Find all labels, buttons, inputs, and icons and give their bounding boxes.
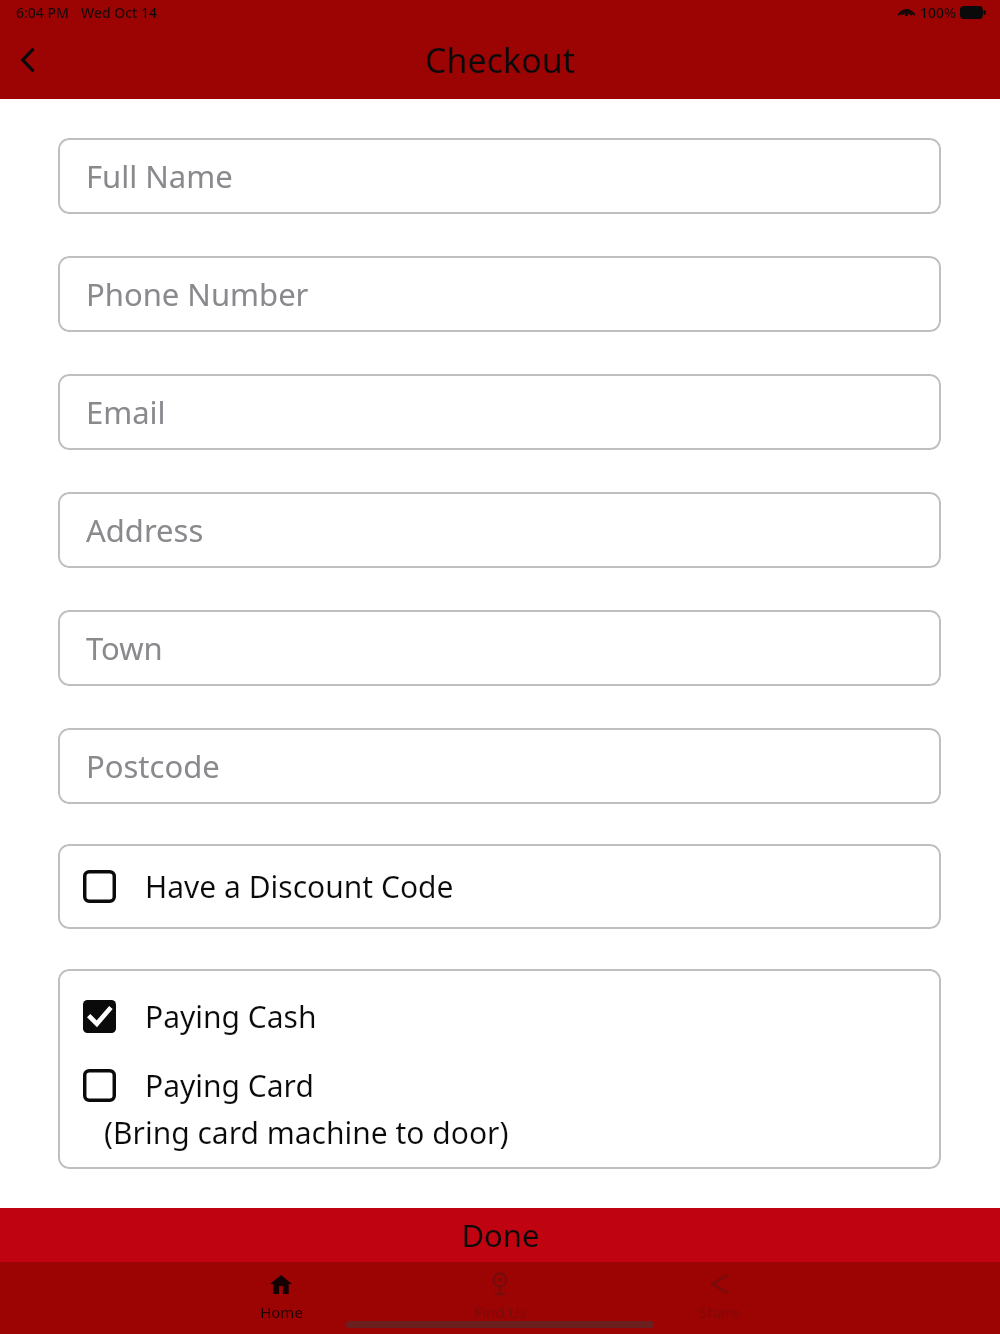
- staticText: Done: [461, 1214, 540, 1256]
- button[interactable]: Paying Cash: [83, 996, 941, 1037]
- staticText: Wed Oct 14: [81, 3, 158, 22]
- button[interactable]: Have a Discount Code: [58, 844, 941, 929]
- button[interactable]: Phone Number: [58, 256, 941, 332]
- button[interactable]: Home: [221, 1270, 341, 1324]
- staticText: 100%: [920, 3, 956, 22]
- button[interactable]: Town: [58, 610, 941, 686]
- staticText: Paying Cash: [145, 996, 317, 1037]
- button[interactable]: Done: [0, 1208, 1000, 1262]
- button[interactable]: Back: [0, 32, 56, 88]
- button[interactable]: Paying Card: [58, 1065, 941, 1153]
- staticText: (Bring card machine to door): [104, 1112, 509, 1153]
- staticText: Email: [86, 391, 166, 433]
- staticText: Home: [260, 1302, 303, 1322]
- staticText: Checkout: [425, 37, 576, 83]
- staticText: Paying Card: [145, 1065, 314, 1106]
- staticText: Find Us: [474, 1302, 527, 1322]
- staticText: Share: [699, 1302, 740, 1322]
- button[interactable]: Address: [58, 492, 941, 568]
- staticText: Full Name: [86, 155, 233, 197]
- staticText: 6:04 PM: [16, 3, 69, 22]
- staticText: Town: [86, 627, 163, 669]
- button[interactable]: Email: [58, 374, 941, 450]
- staticText: Phone Number: [86, 273, 309, 315]
- staticText: Have a Discount Code: [145, 866, 454, 907]
- staticText: Postcode: [86, 745, 220, 787]
- button[interactable]: Share: [659, 1270, 779, 1324]
- button[interactable]: Find Us: [440, 1270, 560, 1324]
- button[interactable]: Full Name: [58, 138, 941, 214]
- button[interactable]: Postcode: [58, 728, 941, 804]
- staticText: Address: [86, 509, 204, 551]
